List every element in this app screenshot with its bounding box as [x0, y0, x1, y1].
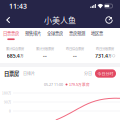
staticText: 日票房: [4, 70, 19, 77]
button[interactable]: 日票票房: [3, 28, 19, 43]
staticText: 日排片: [23, 71, 35, 76]
button[interactable]: 今日分时: [92, 69, 116, 78]
staticText: 预售排片: [25, 30, 41, 36]
staticText: 万: [108, 53, 111, 58]
staticText: 地区票: [91, 30, 103, 36]
staticText: 05-27 11:00: [44, 82, 63, 87]
staticText: 万: [20, 53, 23, 58]
staticText: 日票票房: [3, 30, 19, 36]
staticText: 小美人鱼: [44, 14, 76, 26]
button[interactable]: 预售排片: [25, 28, 41, 43]
button[interactable]: 票房预测: [69, 28, 85, 43]
button[interactable]: 日票房: [4, 70, 19, 77]
staticText: 731.4: [95, 52, 108, 59]
button[interactable]: 地区票: [91, 28, 103, 43]
staticText: 累计分账票房: [36, 47, 54, 51]
staticText: 11:43: [9, 1, 27, 11]
staticText: 全球票房: [47, 30, 63, 36]
staticText: 90万: [4, 100, 11, 104]
staticText: 分日: [84, 71, 92, 76]
button[interactable]: 分日: [84, 71, 92, 76]
staticText: 累计综合票房: [6, 47, 24, 51]
staticText: 179.5万票房: [69, 82, 90, 87]
staticText: 票房预测: [69, 30, 85, 36]
staticText: --: [43, 52, 47, 59]
staticText: --: [73, 52, 77, 59]
button[interactable]: 日排片: [19, 71, 35, 76]
staticText: 180万: [2, 91, 11, 95]
staticText: 今日分时: [97, 71, 113, 76]
staticText: 昨日分账票房: [96, 47, 114, 51]
button[interactable]: Back: [1, 12, 15, 28]
staticText: 昨日综合票房: [66, 47, 84, 51]
button[interactable]: Share: [102, 12, 116, 28]
button[interactable]: 全球票房: [47, 28, 63, 43]
staticText: 685.4: [7, 52, 20, 59]
staticText: 0: [9, 109, 11, 113]
